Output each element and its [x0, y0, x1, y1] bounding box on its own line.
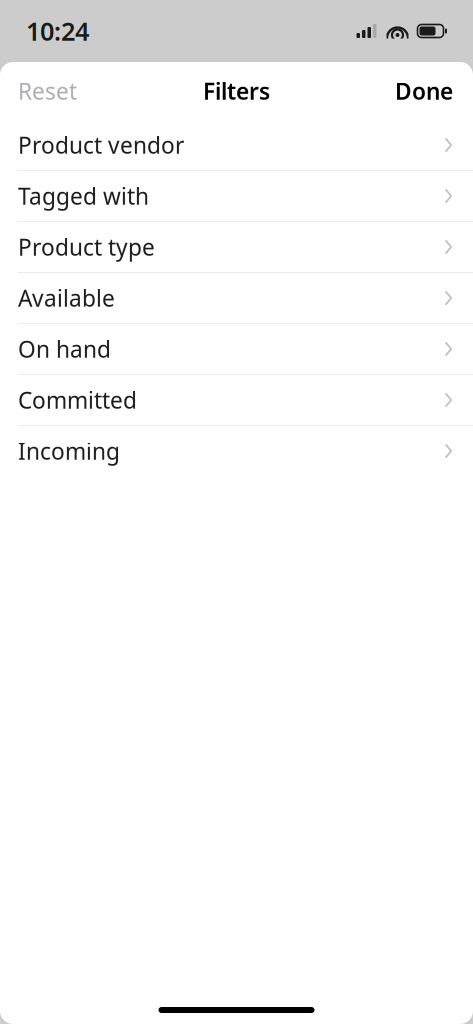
staticText: Committed	[18, 385, 137, 415]
staticText: Available	[18, 283, 115, 313]
staticText: On hand	[18, 334, 111, 364]
button[interactable]: Product type	[0, 222, 473, 273]
button[interactable]: Tagged with	[0, 171, 473, 222]
button[interactable]: Committed	[0, 375, 473, 426]
staticText: Reset	[18, 76, 77, 106]
staticText: Product type	[18, 232, 155, 262]
button[interactable]: Reset	[0, 65, 95, 117]
staticText: 10:24	[26, 14, 89, 48]
staticText: Filters	[203, 76, 270, 106]
button[interactable]: Product vendor	[0, 120, 473, 171]
button[interactable]: Incoming	[0, 426, 473, 477]
button[interactable]: Done	[375, 65, 473, 117]
staticText: Done	[395, 76, 453, 106]
staticText: Tagged with	[18, 181, 149, 211]
button[interactable]: Available	[0, 273, 473, 324]
staticText: Product vendor	[18, 130, 184, 160]
button[interactable]: On hand	[0, 324, 473, 375]
staticText: Incoming	[18, 436, 120, 466]
